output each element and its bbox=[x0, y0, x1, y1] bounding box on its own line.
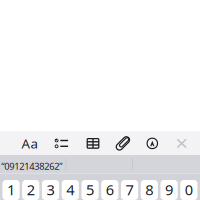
staticText: 3 bbox=[46, 180, 54, 199]
staticText: 5 bbox=[86, 180, 94, 199]
button[interactable]: 0 bbox=[180, 180, 197, 200]
button[interactable]: Table bbox=[80, 131, 106, 155]
staticText: 2 bbox=[27, 180, 35, 199]
staticText: 0 bbox=[185, 180, 193, 199]
button[interactable]: Attach file bbox=[110, 131, 136, 155]
staticText: 9 bbox=[165, 180, 173, 199]
button[interactable]: 1 bbox=[2, 180, 20, 200]
staticText: 7 bbox=[126, 180, 134, 199]
button[interactable]: 4 bbox=[62, 180, 79, 200]
button[interactable]: 7 bbox=[121, 180, 138, 200]
button[interactable]: “09121438262” bbox=[1, 157, 65, 175]
button[interactable]: Checklist bbox=[48, 131, 74, 155]
staticText: 1 bbox=[7, 180, 15, 199]
staticText: Aa bbox=[21, 134, 37, 152]
staticText: 6 bbox=[106, 180, 114, 199]
staticText: 4 bbox=[66, 180, 74, 199]
button[interactable]: 6 bbox=[101, 180, 118, 200]
button[interactable]: Aa bbox=[14, 131, 44, 155]
button[interactable]: 8 bbox=[141, 180, 158, 200]
button[interactable]: 3 bbox=[42, 180, 59, 200]
button[interactable]: Hide keyboard bbox=[169, 131, 195, 155]
staticText: “09121438262” bbox=[1, 160, 62, 172]
button[interactable]: 2 bbox=[22, 180, 39, 200]
button[interactable]: 9 bbox=[160, 180, 178, 200]
button[interactable]: 5 bbox=[81, 180, 99, 200]
staticText: 8 bbox=[145, 180, 153, 199]
button[interactable]: Markup bbox=[139, 131, 165, 155]
